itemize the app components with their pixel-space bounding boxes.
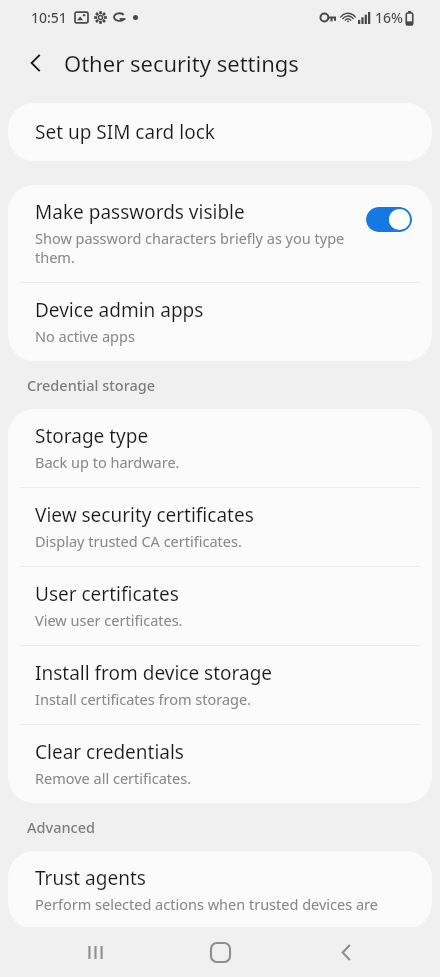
staticText: View security certificates	[35, 502, 254, 528]
staticText: Install from device storage	[35, 660, 273, 686]
staticText: Device admin apps	[35, 297, 204, 323]
button[interactable]: Make passwords visible	[8, 185, 432, 282]
button[interactable]: Set up SIM card lock	[8, 103, 432, 161]
button[interactable]: Make passwords visible toggle	[366, 207, 412, 232]
staticText: Advanced	[27, 817, 95, 837]
staticText: 10:51	[31, 8, 67, 27]
staticText: Back up to hardware.	[35, 452, 180, 472]
button[interactable]: User certificates	[8, 567, 432, 645]
staticText: Credential storage	[27, 375, 156, 395]
staticText: User certificates	[35, 581, 179, 607]
button[interactable]: Clear credentials	[8, 725, 432, 803]
staticText: Display trusted CA certificates.	[35, 531, 242, 551]
staticText: Trust agents	[35, 865, 146, 891]
button[interactable]: Back	[14, 41, 58, 85]
staticText: Set up SIM card lock	[35, 119, 215, 145]
button[interactable]: Install from device storage	[8, 646, 432, 724]
button[interactable]: Home	[189, 927, 251, 977]
staticText: View user certificates.	[35, 610, 183, 630]
staticText: 16%	[375, 8, 403, 27]
staticText: Clear credentials	[35, 739, 184, 765]
staticText: No active apps	[35, 326, 135, 346]
staticText: Show password characters briefly as you …	[35, 228, 352, 267]
button[interactable]: Recent apps	[64, 927, 126, 977]
staticText: Storage type	[35, 423, 149, 449]
staticText: Other security settings	[64, 48, 299, 78]
staticText: Remove all certificates.	[35, 768, 192, 788]
staticText: Make passwords visible	[35, 199, 245, 225]
button[interactable]: Trust agents	[8, 851, 432, 929]
button[interactable]: Storage type	[8, 409, 432, 487]
button[interactable]: Back	[315, 927, 377, 977]
button[interactable]: Device admin apps	[8, 283, 432, 361]
staticText: Perform selected actions when trusted de…	[35, 894, 378, 914]
staticText: Install certificates from storage.	[35, 689, 252, 709]
button[interactable]: View security certificates	[8, 488, 432, 566]
